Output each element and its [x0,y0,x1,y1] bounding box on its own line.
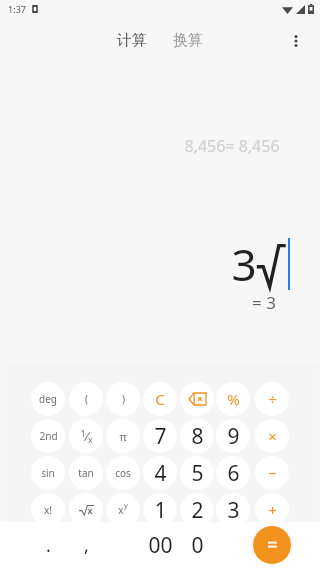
button[interactable]: 5 [180,456,214,490]
button[interactable]: 2nd [31,419,65,453]
button[interactable]: ) [106,382,140,416]
button[interactable]: , [69,528,103,562]
staticText: 计算 [117,31,147,50]
button[interactable]: ( [69,382,103,416]
button[interactable]: cos [106,456,140,490]
staticText: x [88,433,93,445]
button[interactable]: More options [278,23,314,59]
button[interactable]: + [255,493,289,527]
button[interactable]: × [255,419,289,453]
button[interactable]: x [106,493,140,527]
staticText: = [267,532,278,558]
staticText: % [227,389,240,409]
button[interactable]: sin [31,456,65,490]
staticText: 7 [154,422,167,451]
staticText: . [46,533,51,558]
staticText: 3 [227,496,240,525]
staticText: 2 [191,496,204,525]
staticText: y [124,501,128,511]
staticText: x [118,503,124,517]
button[interactable]: . [31,528,65,562]
staticText: × [268,426,277,446]
staticText: 换算 [173,31,203,50]
button[interactable]: 6 [216,456,250,490]
staticText: , [84,533,89,558]
button[interactable]: deg [31,382,65,416]
staticText: 4 [154,459,167,488]
staticText: cos [115,466,131,480]
staticText: 1:37 [8,3,26,15]
staticText: 1 [154,496,167,525]
staticText: − [268,463,277,483]
staticText: ( [85,392,88,406]
button[interactable]: 00 [143,528,177,562]
button[interactable]: 换算 [167,27,209,54]
staticText: tan [78,466,94,480]
button[interactable]: tan [69,456,103,490]
button[interactable] [69,493,103,527]
staticText: 00 [148,531,173,560]
button[interactable]: π [106,419,140,453]
staticText: 2nd [39,429,58,443]
staticText: + [268,500,277,520]
button[interactable]: = [253,526,291,564]
button[interactable]: 1 [143,493,177,527]
staticText: π [119,429,127,444]
staticText: 6 [227,459,240,488]
staticText: 8,456= 8,456 [184,135,280,157]
staticText: 3 [231,234,257,294]
button[interactable]: 7 [143,419,177,453]
staticText: sin [41,466,55,480]
button[interactable]: 8 [180,419,214,453]
staticText: ÷ [268,389,277,409]
button[interactable]: Delete [180,382,214,416]
staticText: x! [44,503,52,517]
button[interactable]: ÷ [255,382,289,416]
button[interactable]: 计算 [111,27,153,54]
staticText: 9 [227,422,240,451]
button[interactable]: 2 [180,493,214,527]
staticText: ⁄ [86,427,88,445]
button[interactable]: 1 [69,419,103,453]
staticText: = 3 [252,291,276,314]
button[interactable]: x! [31,493,65,527]
button[interactable]: − [255,456,289,490]
staticText: C [155,389,165,409]
staticText: 5 [191,459,204,488]
staticText: 8 [191,422,204,451]
staticText: deg [39,392,57,406]
button[interactable]: 4 [143,456,177,490]
button[interactable]: 0 [180,528,214,562]
staticText: ) [122,392,125,406]
staticText: 1 [80,427,86,439]
button[interactable]: % [216,382,250,416]
button[interactable]: C [143,382,177,416]
staticText: 0 [191,531,204,560]
button[interactable]: 3 [216,493,250,527]
button[interactable]: 9 [216,419,250,453]
